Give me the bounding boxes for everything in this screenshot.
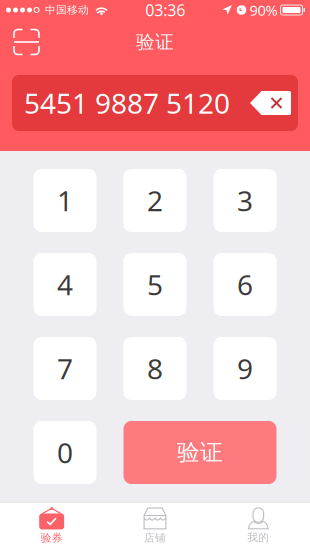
- button[interactable]: 店铺: [103, 502, 207, 550]
- button[interactable]: 9: [213, 337, 276, 400]
- staticText: 3: [237, 182, 253, 219]
- staticText: 5: [147, 266, 163, 303]
- button[interactable]: 我的: [207, 502, 310, 550]
- button[interactable]: 4: [33, 253, 96, 316]
- staticText: 03:36: [145, 0, 185, 21]
- staticText: 验证: [177, 439, 223, 466]
- staticText: 8: [147, 350, 163, 387]
- button[interactable]: 1: [33, 169, 96, 232]
- staticText: 90%: [249, 0, 277, 20]
- staticText: 6: [237, 266, 253, 303]
- staticText: 我的: [247, 531, 269, 544]
- staticText: 验券: [41, 531, 63, 544]
- button[interactable]: 3: [213, 169, 276, 232]
- staticText: 4: [57, 266, 73, 303]
- button[interactable]: 7: [33, 337, 96, 400]
- staticText: 中国移动: [45, 3, 89, 16]
- button[interactable]: 6: [213, 253, 276, 316]
- staticText: 2: [147, 182, 163, 219]
- staticText: 1: [57, 182, 73, 219]
- button[interactable]: 8: [123, 337, 186, 400]
- button[interactable]: Scan: [7, 20, 46, 64]
- staticText: 0: [57, 434, 73, 471]
- staticText: 店铺: [144, 531, 166, 544]
- button[interactable]: 验证: [123, 421, 276, 484]
- button[interactable]: 5: [123, 253, 186, 316]
- button[interactable]: 验券: [0, 502, 103, 550]
- staticText: 验证: [136, 30, 174, 53]
- button[interactable]: 2: [123, 169, 186, 232]
- staticText: 9: [237, 350, 253, 387]
- staticText: 7: [57, 350, 73, 387]
- button[interactable]: 0: [33, 421, 96, 484]
- button[interactable]: Delete: [250, 91, 291, 115]
- staticText: 5451 9887 5120: [24, 84, 230, 122]
